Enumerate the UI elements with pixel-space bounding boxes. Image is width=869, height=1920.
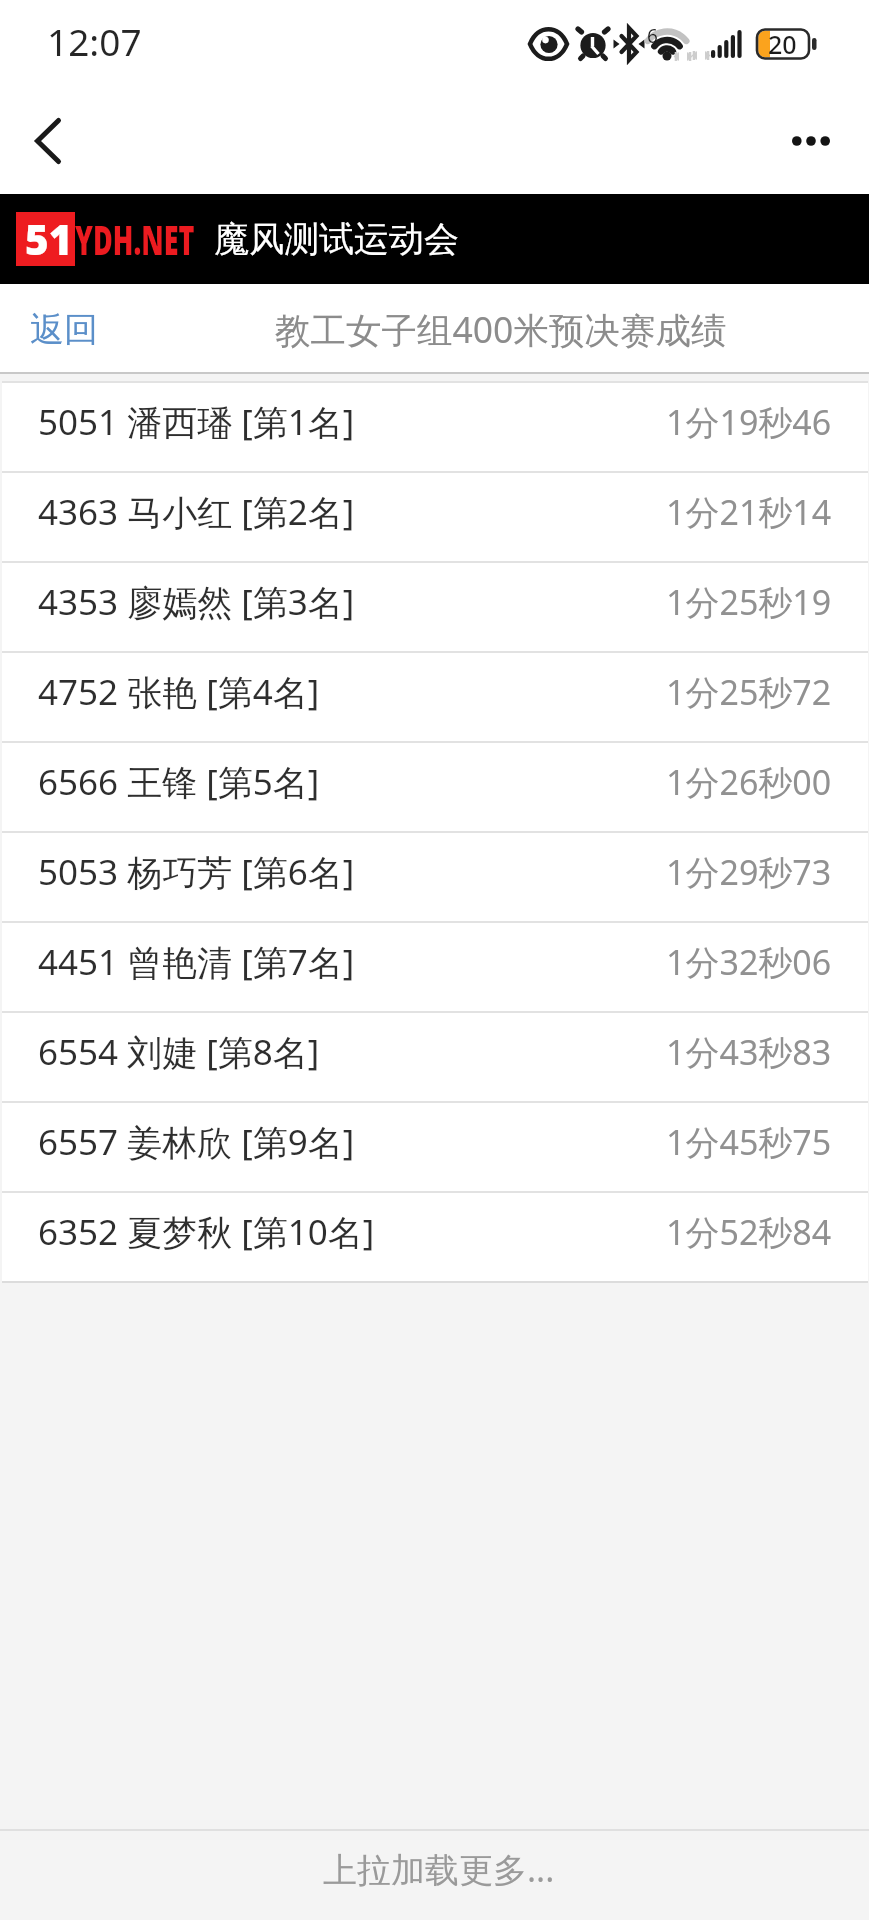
staticText: 51: [25, 210, 73, 264]
staticText: 1分19秒46: [666, 399, 832, 445]
staticText: 1分32秒06: [666, 939, 832, 985]
staticText: 魔风测试运动会: [214, 217, 459, 261]
button[interactable]: 4451 曾艳清 [第7名]: [2, 923, 868, 1011]
staticText: 1分29秒73: [666, 849, 832, 895]
button[interactable]: 4363 马小红 [第2名]: [2, 473, 868, 561]
staticText: 6557 姜林欣 [第9名]: [38, 1118, 355, 1166]
button[interactable]: Back: [1, 94, 95, 188]
staticText: 5051 潘西璠 [第1名]: [38, 398, 355, 446]
button[interactable]: 返回: [0, 284, 128, 374]
staticText: 6566 王锋 [第5名]: [38, 758, 320, 806]
staticText: 4353 廖嫣然 [第3名]: [38, 578, 355, 626]
staticText: 1分25秒19: [666, 579, 832, 625]
button[interactable]: 6554 刘婕 [第8名]: [2, 1013, 868, 1101]
button[interactable]: 6566 王锋 [第5名]: [2, 743, 868, 831]
staticText: 1分21秒14: [666, 489, 832, 535]
button[interactable]: 上拉加载更多...: [0, 1831, 869, 1920]
staticText: 12:07: [47, 16, 142, 66]
staticText: 4752 张艳 [第4名]: [38, 668, 320, 716]
staticText: 返回: [30, 308, 98, 351]
staticText: 1分26秒00: [666, 759, 832, 805]
button[interactable]: 5051 潘西璠 [第1名]: [2, 383, 868, 471]
staticText: 6554 刘婕 [第8名]: [38, 1028, 320, 1076]
staticText: 6352 夏梦秋 [第10名]: [38, 1208, 375, 1256]
staticText: 1分52秒84: [666, 1209, 832, 1255]
staticText: 20: [768, 27, 797, 61]
button[interactable]: 5053 杨巧芳 [第6名]: [2, 833, 868, 921]
button[interactable]: 4353 廖嫣然 [第3名]: [2, 563, 868, 651]
button[interactable]: 6557 姜林欣 [第9名]: [2, 1103, 868, 1191]
staticText: 教工女子组400米预决赛成绩: [275, 305, 727, 353]
staticText: 5053 杨巧芳 [第6名]: [38, 848, 355, 896]
staticText: 6: [647, 23, 658, 49]
staticText: 上拉加载更多...: [323, 1846, 555, 1892]
staticText: 4363 马小红 [第2名]: [38, 488, 355, 536]
button[interactable]: More options: [764, 94, 858, 188]
staticText: 4451 曾艳清 [第7名]: [38, 938, 355, 986]
staticText: YDH.NET: [75, 212, 195, 266]
button[interactable]: 4752 张艳 [第4名]: [2, 653, 868, 741]
staticText: 1分45秒75: [666, 1119, 832, 1165]
button[interactable]: 6352 夏梦秋 [第10名]: [2, 1193, 868, 1281]
staticText: 1分25秒72: [666, 669, 832, 715]
staticText: 1分43秒83: [666, 1029, 832, 1075]
